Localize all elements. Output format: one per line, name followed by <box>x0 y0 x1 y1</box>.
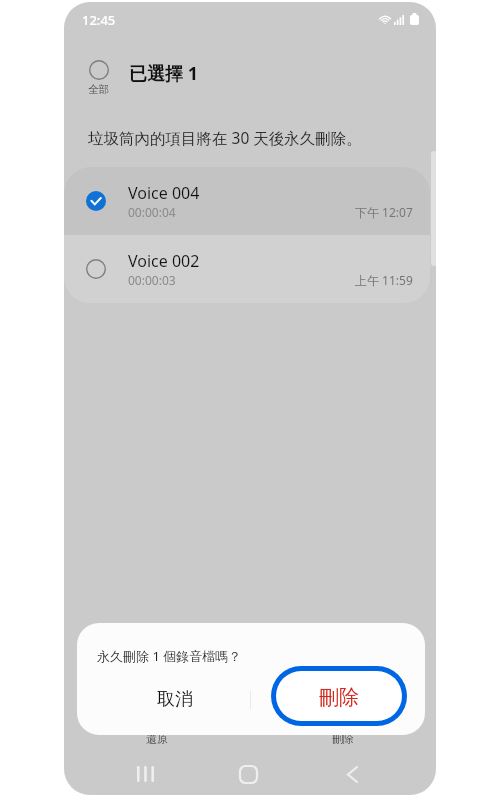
staticText: 上午 11:59 <box>355 272 413 288</box>
staticText: 12:45 <box>82 11 116 29</box>
staticText: 取消 <box>157 688 193 711</box>
staticText: 下午 12:07 <box>355 204 413 220</box>
staticText: 00:00:03 <box>128 272 176 288</box>
button[interactable]: 刪除 <box>250 732 436 746</box>
staticText: 已選擇 1 <box>129 61 198 86</box>
button[interactable]: Back <box>326 755 378 793</box>
button[interactable]: 還原 <box>64 732 250 746</box>
staticText: 全部 <box>88 83 109 96</box>
staticText: Voice 002 <box>128 250 200 272</box>
button[interactable]: Home <box>222 755 274 793</box>
button[interactable]: 取消 <box>90 669 260 729</box>
button[interactable]: 刪除 <box>276 671 402 721</box>
staticText: 垃圾筒內的項目將在 30 天後永久刪除。 <box>88 127 362 148</box>
staticText: 永久刪除 1 個錄音檔嗎？ <box>97 647 242 665</box>
button[interactable]: Select all <box>88 60 109 96</box>
button[interactable]: Recent apps <box>119 755 171 793</box>
staticText: 刪除 <box>332 732 354 746</box>
staticText: 刪除 <box>319 685 359 710</box>
staticText: Voice 004 <box>128 182 200 204</box>
button[interactable]: Voice 004 <box>64 167 430 235</box>
staticText: 00:00:04 <box>128 204 176 220</box>
staticText: 還原 <box>146 732 168 746</box>
button[interactable]: Voice 002 <box>64 235 430 303</box>
